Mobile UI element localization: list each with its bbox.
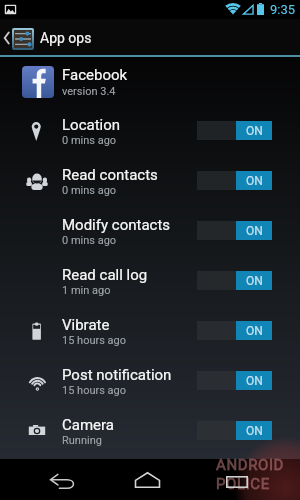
staticText: ON bbox=[246, 174, 263, 188]
staticText: 0 mins ago bbox=[62, 134, 117, 147]
button[interactable]: Recent apps bbox=[213, 467, 260, 493]
staticText: Vibrate bbox=[62, 316, 110, 334]
button[interactable]: Vibrate bbox=[0, 306, 300, 356]
button[interactable]: Modify contacts bbox=[0, 206, 300, 256]
staticText: 15 hours ago bbox=[62, 334, 127, 347]
staticText: App ops bbox=[40, 30, 92, 46]
button[interactable]: Camera bbox=[0, 406, 300, 456]
button[interactable]: Post notification bbox=[0, 356, 300, 406]
staticText: version 3.4 bbox=[62, 85, 116, 98]
staticText: Read call log bbox=[62, 266, 148, 284]
staticText: 0 mins ago bbox=[62, 234, 117, 247]
staticText: Post notification bbox=[62, 366, 172, 384]
staticText: Facebook bbox=[62, 66, 128, 84]
button[interactable]: Back bbox=[38, 467, 85, 493]
button[interactable]: Navigate up bbox=[0, 19, 300, 55]
staticText: POLICE bbox=[216, 475, 270, 493]
button[interactable]: Read call log bbox=[0, 256, 300, 306]
staticText: ON bbox=[246, 324, 263, 338]
button[interactable]: Location bbox=[0, 106, 300, 156]
staticText: Running bbox=[62, 434, 102, 447]
staticText: ON bbox=[246, 124, 263, 138]
staticText: 0 mins ago bbox=[62, 184, 117, 197]
staticText: 9:35 bbox=[270, 2, 296, 17]
staticText: 15 hours ago bbox=[62, 384, 127, 397]
staticText: Location bbox=[62, 116, 121, 134]
staticText: Modify contacts bbox=[62, 216, 171, 234]
staticText: ON bbox=[246, 374, 263, 388]
staticText: 1 min ago bbox=[62, 284, 111, 297]
staticText: Camera bbox=[62, 416, 114, 434]
staticText: ANDROID bbox=[216, 456, 285, 474]
button[interactable]: Home bbox=[124, 467, 171, 493]
staticText: Read contacts bbox=[62, 166, 158, 184]
staticText: ON bbox=[246, 274, 263, 288]
button[interactable]: Read contacts bbox=[0, 156, 300, 206]
staticText: ON bbox=[246, 424, 263, 438]
staticText: ON bbox=[246, 224, 263, 238]
